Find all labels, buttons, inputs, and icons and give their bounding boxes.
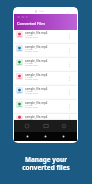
button[interactable]: More options	[66, 31, 74, 41]
staticText: Manage your converted files	[0, 155, 92, 172]
staticText: 1.2 MB	[25, 62, 33, 65]
staticText: 22 May 2021	[25, 36, 38, 39]
staticText: sample_file.mp4	[25, 115, 48, 119]
button[interactable]: More options	[66, 59, 74, 69]
button[interactable]: More options	[66, 115, 74, 120]
staticText: 1.2 MB	[25, 90, 33, 93]
button[interactable]: sample_file.mp4	[14, 44, 77, 58]
staticText: 22 May 2021	[25, 50, 38, 53]
button[interactable]: sample_file.mp4	[14, 114, 77, 120]
button[interactable]: More options	[66, 101, 74, 111]
button[interactable]: More options	[66, 45, 74, 55]
button[interactable]: sample_file.mp4	[14, 30, 77, 44]
staticText: 22 May 2021	[25, 106, 38, 109]
button[interactable]: Back	[23, 132, 32, 141]
staticText: sample_file.mp4	[25, 87, 48, 91]
staticText: sample_file.mp4	[25, 31, 48, 35]
staticText: 22 May 2021	[25, 64, 38, 67]
button[interactable]: sample_file.mp4	[14, 86, 77, 100]
staticText: 22 May 2021	[25, 78, 38, 81]
staticText: sample_file.mp4	[25, 45, 48, 49]
button[interactable]: More options	[66, 87, 74, 97]
staticText: sample_file.mp4	[25, 59, 48, 63]
button[interactable]: Settings	[58, 120, 70, 132]
button[interactable]: sample_file.mp4	[14, 58, 77, 72]
button[interactable]: sample_file.mp4	[14, 72, 77, 86]
button[interactable]: Folders	[40, 120, 52, 132]
button[interactable]: Home	[41, 132, 50, 141]
staticText: 1.2 MB	[25, 34, 33, 37]
staticText: sample_file.mp4	[25, 101, 48, 105]
button[interactable]: sample_file.mp4	[14, 100, 77, 114]
staticText: 1.2 MB	[25, 104, 33, 107]
staticText: 22 May 2021	[25, 92, 38, 95]
staticText: 1.2 MB	[25, 48, 33, 51]
staticText: 1.2 MB	[25, 76, 33, 79]
staticText: Converted Files	[17, 21, 46, 26]
button[interactable]: More options	[66, 73, 74, 83]
staticText: sample_file.mp4	[25, 73, 48, 77]
button[interactable]: Files	[21, 120, 33, 132]
button[interactable]: Recents	[59, 132, 68, 141]
staticText: 1.2 MB	[25, 118, 33, 121]
